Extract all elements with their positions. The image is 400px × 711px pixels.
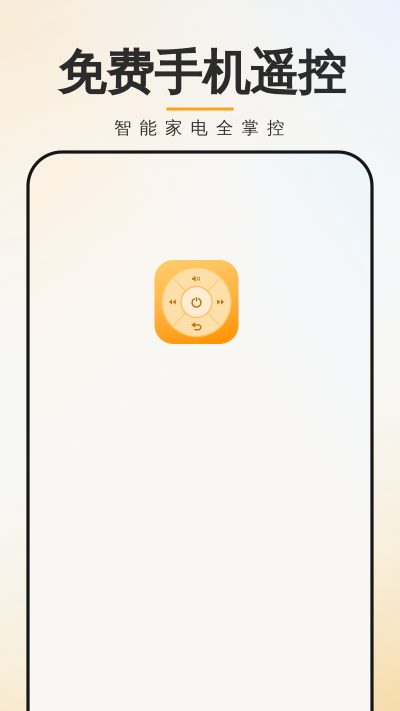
staticText: 全 [216, 117, 233, 139]
staticText: 智 [114, 117, 131, 139]
staticText: 免费手机遥控 [58, 43, 346, 102]
staticText: 控 [267, 117, 284, 139]
staticText: 能 [139, 117, 156, 139]
staticText: 电 [190, 117, 207, 139]
staticText: 掌 [241, 117, 258, 139]
staticText: 家 [165, 117, 182, 139]
